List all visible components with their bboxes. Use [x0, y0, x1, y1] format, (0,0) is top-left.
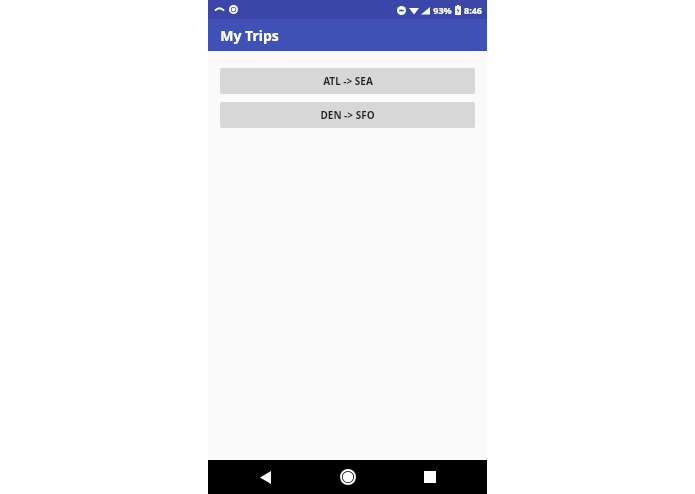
staticText: 93%: [433, 4, 452, 16]
button[interactable]: Back: [240, 460, 290, 494]
staticText: My Trips: [220, 26, 279, 45]
button[interactable]: DEN -> SFO: [220, 102, 475, 128]
staticText: ATL -> SEA: [323, 74, 373, 88]
button[interactable]: Recent apps: [405, 460, 455, 494]
staticText: 8:46: [464, 4, 482, 16]
button[interactable]: ATL -> SEA: [220, 68, 475, 94]
button[interactable]: Home: [323, 460, 373, 494]
staticText: DEN -> SFO: [320, 108, 375, 122]
